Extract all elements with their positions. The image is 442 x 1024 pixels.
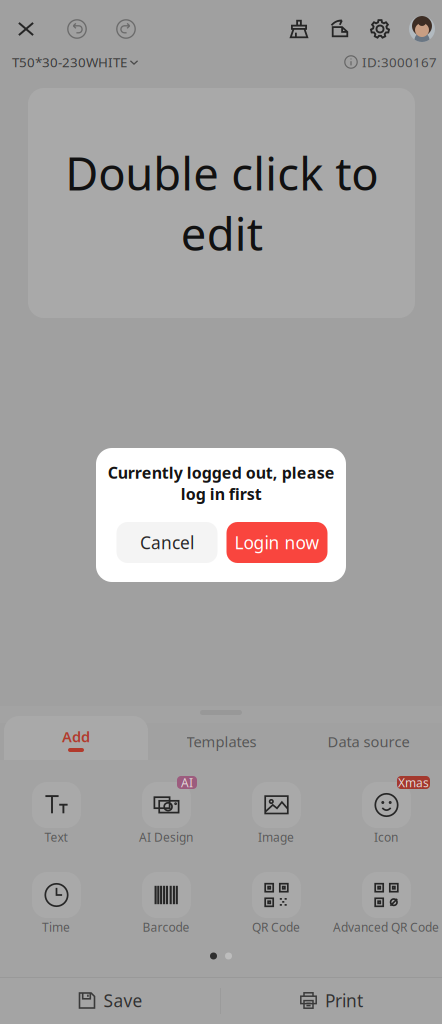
staticText: ID:3000167 — [362, 53, 437, 71]
button[interactable]: Account — [405, 7, 439, 51]
button[interactable]: AI — [111, 776, 221, 846]
button[interactable]: Share — [320, 7, 360, 51]
staticText: AI — [181, 774, 193, 790]
button[interactable]: Image — [221, 776, 331, 846]
staticText: Templates — [186, 732, 256, 751]
staticText: Print — [325, 989, 363, 1012]
staticText: Add — [62, 727, 90, 746]
button[interactable]: Text — [1, 776, 111, 846]
button[interactable]: Data source — [295, 723, 442, 760]
staticText: Save — [103, 989, 142, 1012]
staticText: T50*30-230WHITE — [12, 53, 127, 71]
button[interactable]: Time — [1, 866, 111, 936]
button[interactable]: Print — [221, 977, 441, 1024]
staticText: Login now — [234, 531, 319, 554]
staticText: Xmas — [398, 774, 429, 790]
button[interactable]: Cancel — [116, 522, 217, 563]
button[interactable]: ID:3000167 — [344, 49, 437, 75]
staticText: Time — [42, 919, 70, 935]
staticText: Double click to edit — [65, 143, 378, 263]
button[interactable]: Advanced QR Code — [331, 866, 441, 936]
button[interactable]: Settings — [360, 7, 400, 51]
staticText: Text — [44, 829, 67, 845]
staticText: QR Code — [252, 919, 300, 935]
staticText: Data source — [327, 732, 409, 751]
staticText: Currently logged out, please log in firs… — [107, 462, 334, 504]
button[interactable]: T50*30-230WHITE — [12, 49, 139, 75]
button[interactable]: Close — [4, 7, 48, 51]
button[interactable]: QR Code — [221, 866, 331, 936]
button[interactable]: Save — [0, 977, 220, 1024]
button[interactable]: Templates — [148, 723, 295, 760]
staticText: AI Design — [139, 829, 193, 845]
button[interactable]: Xmas — [331, 776, 441, 846]
staticText: Barcode — [142, 919, 189, 935]
button[interactable]: Undo — [55, 7, 99, 51]
staticText: Image — [258, 829, 294, 845]
button[interactable]: Login now — [226, 522, 327, 563]
button[interactable]: Add — [4, 718, 148, 762]
button[interactable]: Redo — [104, 7, 148, 51]
staticText: Cancel — [140, 531, 194, 554]
staticText: Advanced QR Code — [333, 919, 439, 935]
button[interactable]: Clear canvas — [279, 7, 319, 51]
button[interactable]: Barcode — [111, 866, 221, 936]
staticText: Icon — [374, 829, 398, 845]
